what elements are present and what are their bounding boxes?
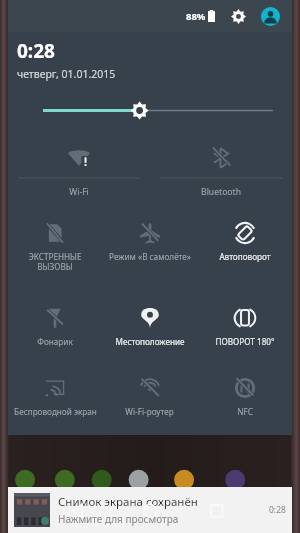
staticText: Автоповорот [219,251,271,262]
button[interactable]: ЭКСТРЕННЫЕ ВЫЗОВЫ [8,210,102,295]
button[interactable]: Brightness [8,87,292,134]
button[interactable]: Автоповорот [197,210,292,295]
staticText: Wi-Fi-роутер [125,406,174,417]
button[interactable]: ПОВОРОТ 180° [197,295,292,365]
staticText: Нажмите для просмотра [58,512,179,526]
button[interactable]: Wi-Fi [8,134,150,210]
button[interactable]: Фонарик [8,295,102,365]
button[interactable]: User profile [258,4,282,28]
staticText: ЭКСТРЕННЫЕ ВЫЗОВЫ [28,251,82,272]
staticText: Беспроводной экран [14,406,97,417]
button[interactable]: NFC [197,365,292,435]
button[interactable]: Снимок экрана сохранён [8,487,292,533]
button[interactable]: Режим «В самолёте» [102,210,197,295]
staticText: NFC [237,406,253,417]
button[interactable]: Беспроводной экран [8,365,102,435]
button[interactable]: Settings [226,4,250,28]
staticText: Режим «В самолёте» [109,251,191,262]
button[interactable]: Bluetooth [150,134,292,210]
staticText: Wi-Fi [69,186,89,198]
button[interactable]: Местоположение [102,295,197,365]
staticText: Снимок экрана сохранён [58,494,198,510]
staticText: 88% [186,10,206,23]
staticText: Фонарик [37,336,73,347]
button[interactable]: Wi-Fi-роутер [102,365,197,435]
staticText: четверг, 01.01.2015 [17,67,116,81]
staticText: 0:28 [269,504,286,516]
staticText: 0:28 [17,38,55,64]
staticText: ПОВОРОТ 180° [215,336,275,347]
staticText: Местоположение [115,336,185,347]
staticText: Bluetooth [201,186,241,198]
